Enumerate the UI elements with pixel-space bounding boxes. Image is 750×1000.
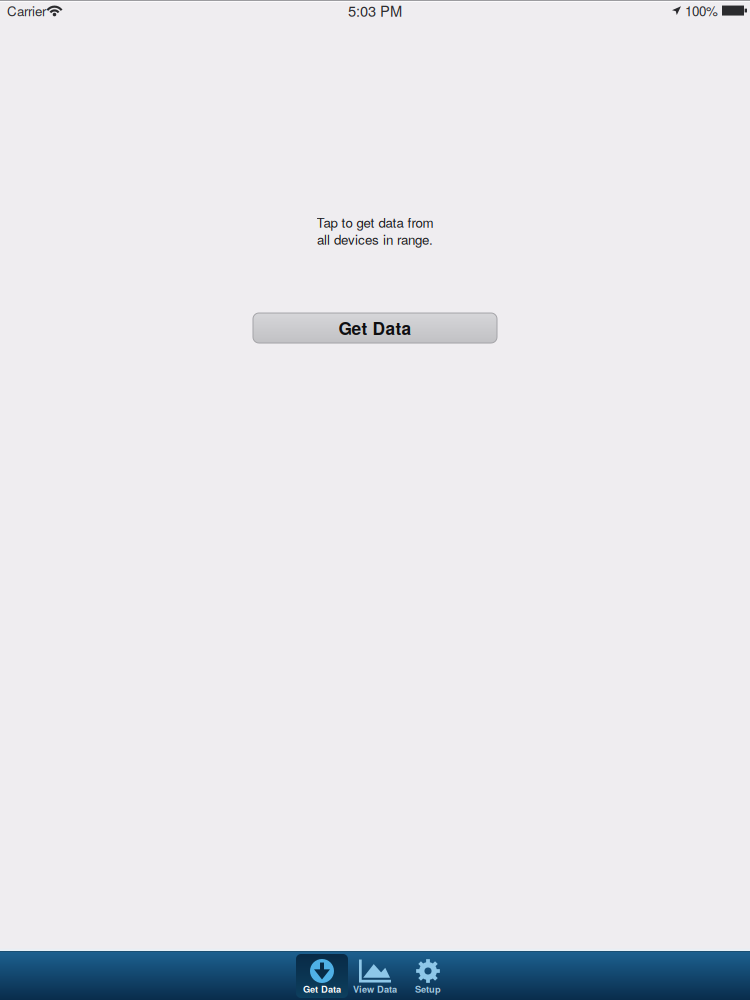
staticText: View Data <box>353 982 397 996</box>
staticText: 100% <box>685 1 718 20</box>
button[interactable]: View Data <box>349 954 401 998</box>
staticText: Tap to get data from <box>316 212 433 232</box>
staticText: Get Data <box>303 982 341 996</box>
button[interactable]: Setup <box>402 954 454 998</box>
staticText: all devices in range. <box>317 229 433 249</box>
button[interactable]: Get Data <box>296 954 348 998</box>
staticText: 5:03 PM <box>348 0 402 21</box>
button[interactable]: Get Data <box>253 313 497 343</box>
staticText: Setup <box>415 982 441 996</box>
staticText: Get Data <box>338 316 411 340</box>
staticText: Carrier <box>7 1 46 20</box>
